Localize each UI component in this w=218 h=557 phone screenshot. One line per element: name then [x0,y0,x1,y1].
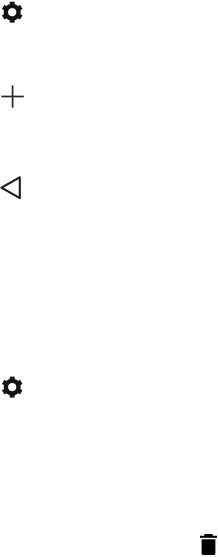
button[interactable]: Settings [2,2,23,23]
button[interactable]: Add [1,85,24,108]
button[interactable]: Settings [2,377,23,398]
button[interactable]: Back [1,177,20,198]
button[interactable]: Delete [200,534,217,555]
